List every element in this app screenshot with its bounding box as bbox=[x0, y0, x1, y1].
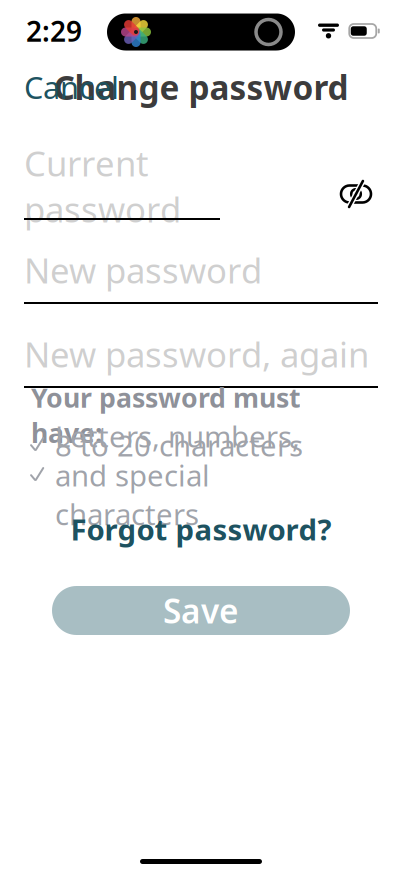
staticText: New password, again bbox=[24, 331, 369, 377]
staticText: Your password must have: bbox=[31, 380, 301, 450]
button[interactable]: Forgot password? bbox=[56, 512, 345, 546]
staticText: 2:29 bbox=[26, 12, 82, 50]
staticText: Save bbox=[163, 588, 239, 633]
staticText: New password bbox=[24, 247, 262, 293]
staticText: Current password bbox=[24, 140, 181, 232]
staticText: Letters, numbers, and special characters bbox=[55, 417, 300, 533]
staticText: 8 to 20 characters bbox=[55, 425, 303, 464]
staticText: Change password bbox=[53, 65, 348, 109]
button[interactable]: Show password bbox=[334, 172, 378, 216]
staticText: Forgot password? bbox=[70, 509, 331, 548]
button[interactable]: Save bbox=[52, 586, 350, 635]
staticText: Cancel bbox=[24, 67, 119, 107]
button[interactable]: Cancel bbox=[10, 59, 133, 115]
